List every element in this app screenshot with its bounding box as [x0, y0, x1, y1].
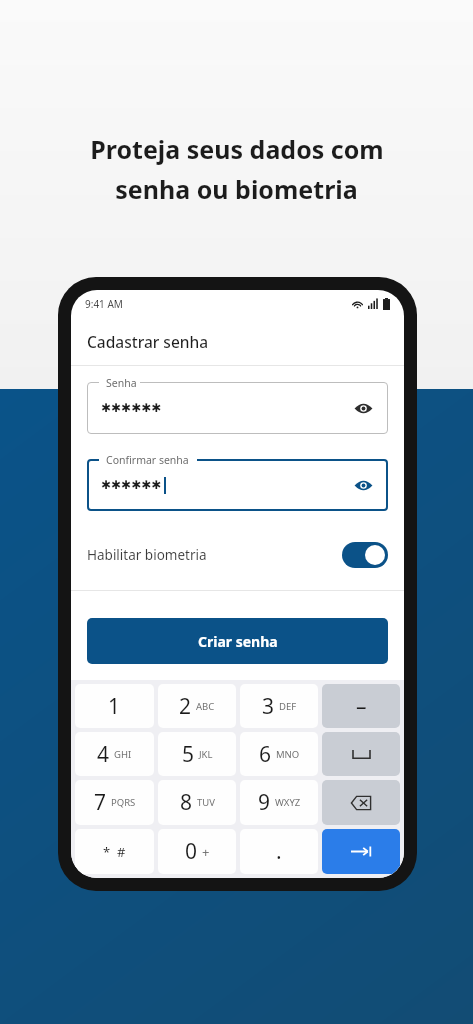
- button[interactable]: Apagar: [322, 780, 400, 825]
- staticText: WXYZ: [275, 796, 301, 809]
- button[interactable]: 6: [240, 732, 318, 776]
- staticText: 2: [179, 692, 192, 721]
- staticText: 6: [259, 740, 272, 769]
- button[interactable]: 5: [158, 732, 236, 776]
- staticText: 7: [94, 788, 107, 817]
- button[interactable]: 3: [240, 684, 318, 728]
- button[interactable]: 0: [158, 829, 236, 874]
- staticText: 8: [180, 788, 193, 817]
- staticText: TUV: [197, 796, 215, 809]
- staticText: ✱✱✱✱✱✱: [101, 401, 162, 415]
- staticText: –: [356, 692, 367, 721]
- button[interactable]: Próximo: [322, 829, 400, 874]
- staticText: MNO: [276, 748, 300, 761]
- staticText: Confirmar senha: [106, 453, 189, 467]
- button[interactable]: Criar senha: [87, 618, 388, 664]
- button[interactable]: 9: [240, 780, 318, 825]
- button[interactable]: Habilitar biometria: [342, 542, 388, 568]
- button[interactable]: * #: [75, 829, 154, 874]
- button[interactable]: Habilitar biometria: [71, 532, 404, 578]
- staticText: Criar senha: [198, 632, 278, 651]
- staticText: 0: [185, 837, 198, 866]
- staticText: 9:41 AM: [85, 297, 123, 311]
- button[interactable]: Mostrar senha: [350, 395, 376, 421]
- button[interactable]: 8: [158, 780, 236, 825]
- staticText: GHI: [114, 748, 132, 761]
- button[interactable]: 2: [158, 684, 236, 728]
- staticText: 5: [182, 740, 195, 769]
- staticText: * #: [103, 843, 126, 861]
- staticText: ✱✱✱✱✱✱: [101, 478, 162, 492]
- staticText: senha ou biometria: [115, 172, 358, 206]
- button[interactable]: 1: [75, 684, 154, 728]
- button[interactable]: .: [240, 829, 318, 874]
- button[interactable]: 7: [75, 780, 154, 825]
- button[interactable]: 4: [75, 732, 154, 776]
- staticText: 3: [262, 692, 275, 721]
- staticText: Cadastrar senha: [87, 331, 209, 352]
- staticText: PQRS: [111, 796, 136, 809]
- staticText: 1: [108, 692, 121, 721]
- staticText: JKL: [199, 748, 213, 761]
- button[interactable]: –: [322, 684, 400, 728]
- staticText: 4: [97, 740, 110, 769]
- staticText: DEF: [279, 700, 297, 713]
- staticText: 9: [258, 788, 271, 817]
- staticText: Senha: [106, 376, 137, 390]
- button[interactable]: Mostrar senha: [350, 472, 376, 498]
- button[interactable]: Espaço: [322, 732, 400, 776]
- staticText: .: [276, 837, 282, 866]
- staticText: ABC: [196, 700, 215, 713]
- staticText: Habilitar biometria: [87, 546, 207, 564]
- staticText: Proteja seus dados com: [90, 132, 384, 166]
- staticText: +: [202, 843, 210, 861]
